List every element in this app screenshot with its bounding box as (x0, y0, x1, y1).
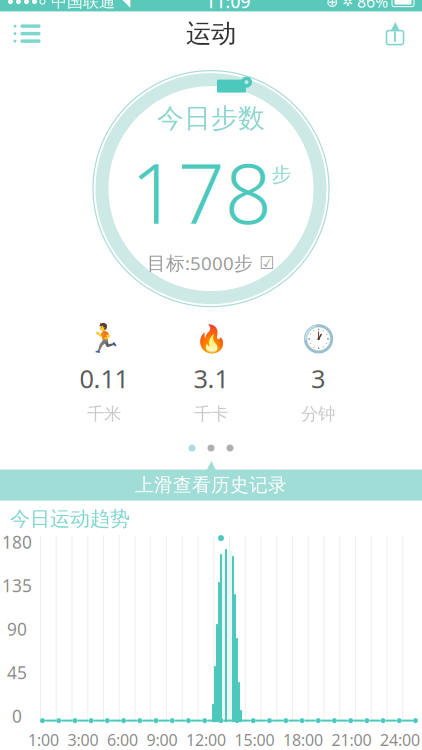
staticText: 目标:5000步 (147, 250, 253, 275)
button[interactable]: Share (368, 12, 422, 56)
staticText: 🕐 (301, 323, 334, 354)
staticText: ✲ (342, 0, 353, 9)
staticText: 12:00 (186, 729, 226, 750)
staticText: 0.11 (79, 362, 128, 395)
staticText: ⊕ (326, 0, 338, 10)
staticText: 千卡 (194, 403, 228, 425)
staticText: 90 (7, 618, 27, 641)
staticText: 运动 (186, 18, 236, 49)
staticText: 3:00 (67, 729, 98, 750)
button[interactable]: ▲ (0, 463, 422, 501)
staticText: 步 (271, 162, 291, 187)
staticText: 今日运动趋势 (10, 507, 130, 531)
staticText: 0 (12, 705, 22, 728)
staticText: 🔥 (194, 323, 227, 354)
staticText: 15:00 (234, 729, 274, 750)
staticText: 178 (130, 137, 271, 246)
staticText: 180 (2, 531, 32, 554)
staticText: 86% (357, 0, 388, 12)
staticText: 135 (2, 574, 32, 597)
staticText: ▲ (204, 456, 217, 476)
button[interactable]: 目标:5000步 (147, 246, 275, 275)
button[interactable]: Menu (0, 12, 54, 56)
staticText: 9:00 (146, 729, 177, 750)
staticText: 11:09 (205, 0, 250, 13)
staticText: 1:00 (28, 729, 59, 750)
staticText: ◥ (120, 0, 130, 9)
staticText: 24:00 (380, 729, 420, 750)
staticText: 3.1 (193, 362, 228, 395)
staticText: 18:00 (283, 729, 323, 750)
staticText: 上滑查看历史记录 (135, 474, 287, 496)
staticText: ☑ (259, 253, 275, 273)
staticText: 3 (311, 362, 325, 395)
staticText: 今日步数 (157, 102, 265, 135)
staticText: ▲ (391, 19, 399, 31)
staticText: 千米 (87, 403, 121, 425)
staticText: 6:00 (107, 729, 138, 750)
staticText: 中国联通 (51, 0, 115, 11)
staticText: 分钟 (301, 403, 335, 425)
staticText: 🏃 (86, 323, 121, 355)
staticText: 45 (7, 661, 27, 684)
staticText: 21:00 (331, 729, 371, 750)
